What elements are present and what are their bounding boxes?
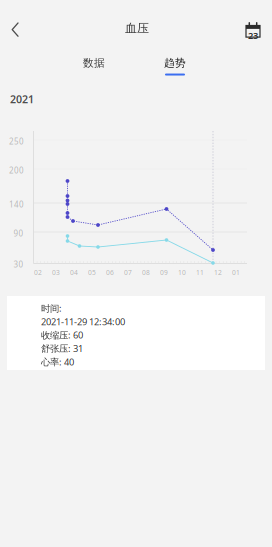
staticText: 09 [160,268,168,277]
staticText: 06 [106,268,114,277]
button[interactable]: 趋势 [147,53,203,79]
staticText: 数据 [83,56,105,69]
staticText: 05 [88,268,96,277]
staticText: 2021 [10,92,34,106]
staticText: 2021-11-29 12:34:00 [41,315,125,328]
staticText: 时间: [41,302,62,314]
staticText: 90 [13,228,23,239]
staticText: 11 [196,268,204,277]
staticText: 23 [248,29,258,41]
button[interactable]: 数据 [66,53,122,79]
staticText: 30 [13,259,23,270]
staticText: 03 [52,268,60,277]
staticText: 200 [9,165,24,176]
staticText: 01 [232,268,240,277]
staticText: 04 [70,268,78,277]
staticText: 10 [178,268,186,277]
staticText: 12 [214,268,222,277]
staticText: 心率: 40 [41,356,74,368]
staticText: 250 [9,136,24,147]
staticText: 07 [124,268,132,277]
staticText: 趋势 [164,56,186,69]
staticText: 140 [9,199,24,210]
staticText: 血压 [125,21,149,36]
staticText: 02 [34,268,42,277]
button[interactable]: Calendar [236,14,272,46]
button[interactable]: Back [0,14,32,46]
staticText: 舒张压: 31 [41,342,83,355]
staticText: 08 [142,268,150,277]
staticText: 收缩压: 60 [41,329,83,341]
